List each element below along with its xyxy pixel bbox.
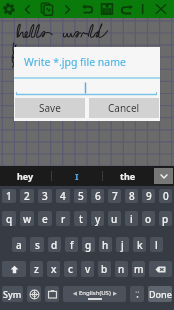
button[interactable]: q <box>2 211 16 226</box>
button[interactable]: g <box>82 237 95 252</box>
staticText: f <box>70 238 74 252</box>
button[interactable]: Punctuation <box>130 286 144 302</box>
button[interactable]: 1 <box>2 189 16 203</box>
button[interactable]: Change language <box>27 286 41 302</box>
staticText: English(US) <box>79 289 111 297</box>
button[interactable]: c <box>64 261 77 277</box>
button[interactable]: Clipboard <box>45 286 59 302</box>
button[interactable]: e <box>38 211 52 226</box>
button[interactable]: y <box>91 211 104 226</box>
button[interactable]: t <box>74 211 87 226</box>
button[interactable]: r <box>56 211 70 226</box>
button[interactable]: Save <box>15 98 85 118</box>
button[interactable]: 3 <box>38 189 52 203</box>
button[interactable]: Close <box>149 0 172 18</box>
button[interactable]: l <box>150 237 163 252</box>
staticText: n <box>118 262 125 276</box>
staticText: b <box>101 262 108 276</box>
staticText: j <box>121 238 124 252</box>
button[interactable]: a <box>12 237 26 252</box>
button[interactable]: b <box>98 261 111 277</box>
staticText: Write *.jpg file name <box>24 55 126 69</box>
staticText: c <box>68 262 73 276</box>
staticText: v <box>85 262 91 276</box>
button[interactable]: i <box>125 211 138 226</box>
staticText: 0 <box>163 189 169 203</box>
button[interactable]: m <box>132 261 145 277</box>
staticText: 4 <box>60 189 66 203</box>
button[interactable]: 8 <box>125 189 138 203</box>
button[interactable]: Sym <box>2 286 23 302</box>
button[interactable]: Shift <box>2 261 26 277</box>
button[interactable]: 2 <box>20 189 34 203</box>
staticText: k <box>137 238 143 252</box>
staticText: t <box>79 212 83 226</box>
staticText: r <box>61 212 66 226</box>
button[interactable]: Space <box>63 286 126 302</box>
button[interactable]: 7 <box>108 189 121 203</box>
staticText: 5 <box>78 189 84 203</box>
button[interactable]: s <box>30 237 44 252</box>
button[interactable]: p <box>159 211 172 226</box>
button[interactable]: o <box>142 211 155 226</box>
staticText: 1 <box>6 189 12 203</box>
button[interactable]: Undo <box>77 0 97 18</box>
staticText: ▶ <box>113 290 117 296</box>
button[interactable]: 0 <box>159 189 172 203</box>
staticText: l <box>155 238 158 252</box>
staticText: d <box>51 238 58 252</box>
staticText: g <box>85 238 92 252</box>
staticText: y <box>95 212 101 226</box>
staticText: 9 <box>146 189 152 203</box>
button[interactable]: Previous page <box>18 0 37 18</box>
staticText: Sym <box>3 288 22 300</box>
button[interactable]: d <box>48 237 61 252</box>
button[interactable]: w <box>20 211 34 226</box>
staticText: hey <box>17 170 34 182</box>
button[interactable]: More suggestions <box>154 168 173 184</box>
button[interactable]: u <box>108 211 121 226</box>
button[interactable]: Redo <box>117 0 138 18</box>
button[interactable]: z <box>30 261 43 277</box>
button[interactable]: Next page <box>57 0 77 18</box>
staticText: Done <box>149 288 172 300</box>
staticText: 3 <box>42 189 48 203</box>
staticText: ◀ <box>73 290 77 296</box>
button[interactable]: Backspace <box>149 261 172 277</box>
button[interactable]: I <box>52 166 102 186</box>
button[interactable]: n <box>115 261 128 277</box>
button[interactable]: 9 <box>142 189 155 203</box>
button[interactable]: 5 <box>74 189 87 203</box>
staticText: p <box>162 212 169 226</box>
button[interactable]: j <box>116 237 129 252</box>
button[interactable]: Pages <box>37 0 57 18</box>
staticText: h <box>102 238 109 252</box>
button[interactable]: x <box>47 261 60 277</box>
staticText: 7 <box>112 189 118 203</box>
button[interactable]: 6 <box>91 189 104 203</box>
staticText: I <box>75 170 79 182</box>
button[interactable]: Cancel <box>89 98 159 118</box>
staticText: e <box>42 212 48 226</box>
button[interactable]: hey <box>0 166 51 186</box>
staticText: a <box>16 238 22 252</box>
staticText: i <box>130 212 133 226</box>
staticText: m <box>134 262 144 276</box>
button[interactable]: v <box>81 261 94 277</box>
button[interactable]: f <box>65 237 78 252</box>
staticText: s <box>35 238 40 252</box>
button[interactable]: Done <box>148 286 172 302</box>
staticText: 2 <box>24 189 30 203</box>
button[interactable]: Settings <box>0 0 18 18</box>
button[interactable]: h <box>99 237 112 252</box>
button[interactable]: Save <box>97 0 117 18</box>
staticText: o <box>145 212 152 226</box>
staticText: the <box>120 170 136 182</box>
staticText: x <box>51 262 57 276</box>
button[interactable]: k <box>133 237 146 252</box>
button[interactable]: the <box>103 166 153 186</box>
staticText: z <box>34 262 39 276</box>
button[interactable]: 4 <box>56 189 70 203</box>
staticText: 8 <box>129 189 135 203</box>
staticText: w <box>23 212 32 226</box>
